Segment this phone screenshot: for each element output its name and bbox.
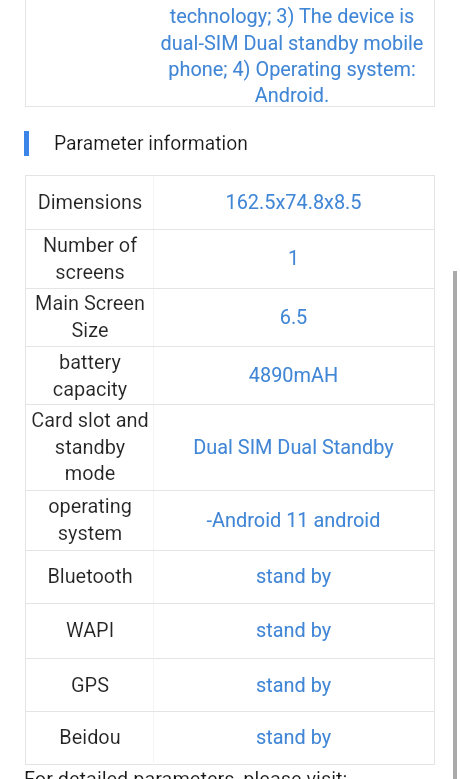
staticText: operating system bbox=[25, 495, 155, 545]
staticText: stand by bbox=[152, 674, 435, 697]
staticText: 1 bbox=[152, 247, 435, 270]
button[interactable]: Dimensions bbox=[25, 175, 435, 229]
staticText: stand by bbox=[152, 726, 435, 749]
staticText: 162.5x74.8x8.5 bbox=[152, 191, 435, 214]
button[interactable]: GPS bbox=[25, 658, 435, 712]
staticText: For detailed parameters, please visit: bbox=[24, 768, 348, 779]
staticText: Bluetooth bbox=[25, 565, 155, 588]
button[interactable]: Bluetooth bbox=[25, 550, 435, 603]
button[interactable]: Card slot and standby mode bbox=[25, 404, 435, 490]
button[interactable]: WAPI bbox=[25, 603, 435, 657]
button[interactable]: Main Screen Size bbox=[25, 288, 435, 346]
staticText: 6.5 bbox=[152, 306, 435, 329]
staticText: battery capacity bbox=[25, 351, 155, 401]
staticText: -Android 11 android bbox=[152, 509, 435, 532]
button[interactable]: Beidou bbox=[25, 711, 435, 763]
staticText: stand by bbox=[152, 565, 435, 588]
staticText: technology; 3) The device is dual-SIM Du… bbox=[150, 5, 434, 107]
button[interactable]: battery capacity bbox=[25, 346, 435, 405]
staticText: WAPI bbox=[25, 619, 155, 642]
staticText: Card slot and standby mode bbox=[25, 409, 155, 485]
staticText: Dual SIM Dual Standby bbox=[152, 436, 435, 459]
staticText: Dimensions bbox=[25, 191, 155, 214]
staticText: stand by bbox=[152, 619, 435, 642]
staticText: GPS bbox=[25, 674, 155, 697]
button[interactable]: operating system bbox=[25, 490, 435, 550]
staticText: Number of screens bbox=[25, 234, 155, 284]
button[interactable]: Parameter information bbox=[0, 118, 460, 168]
button[interactable]: Number of screens bbox=[25, 229, 435, 288]
staticText: Beidou bbox=[25, 726, 155, 749]
staticText: Main Screen Size bbox=[25, 292, 155, 342]
staticText: 4890mAH bbox=[152, 364, 435, 387]
staticText: Parameter information bbox=[54, 132, 248, 155]
